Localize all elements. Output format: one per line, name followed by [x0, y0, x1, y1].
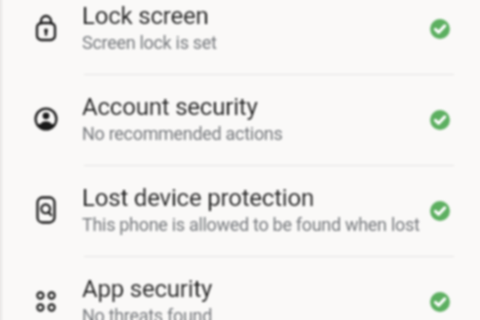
staticText: No recommended actions [82, 123, 283, 144]
staticText: Screen lock is set [82, 32, 217, 53]
button[interactable]: Lost device protection [0, 165, 480, 255]
button[interactable]: App security [0, 256, 480, 320]
staticText: This phone is allowed to be found when l… [82, 214, 420, 235]
staticText: App security [82, 275, 213, 303]
staticText: No threats found [82, 305, 213, 320]
staticText: Lost device protection [82, 184, 315, 212]
staticText: Lock screen [82, 2, 209, 30]
button[interactable]: Account security [0, 74, 480, 164]
button[interactable]: Lock screen [0, 0, 480, 73]
staticText: Account security [82, 93, 258, 121]
